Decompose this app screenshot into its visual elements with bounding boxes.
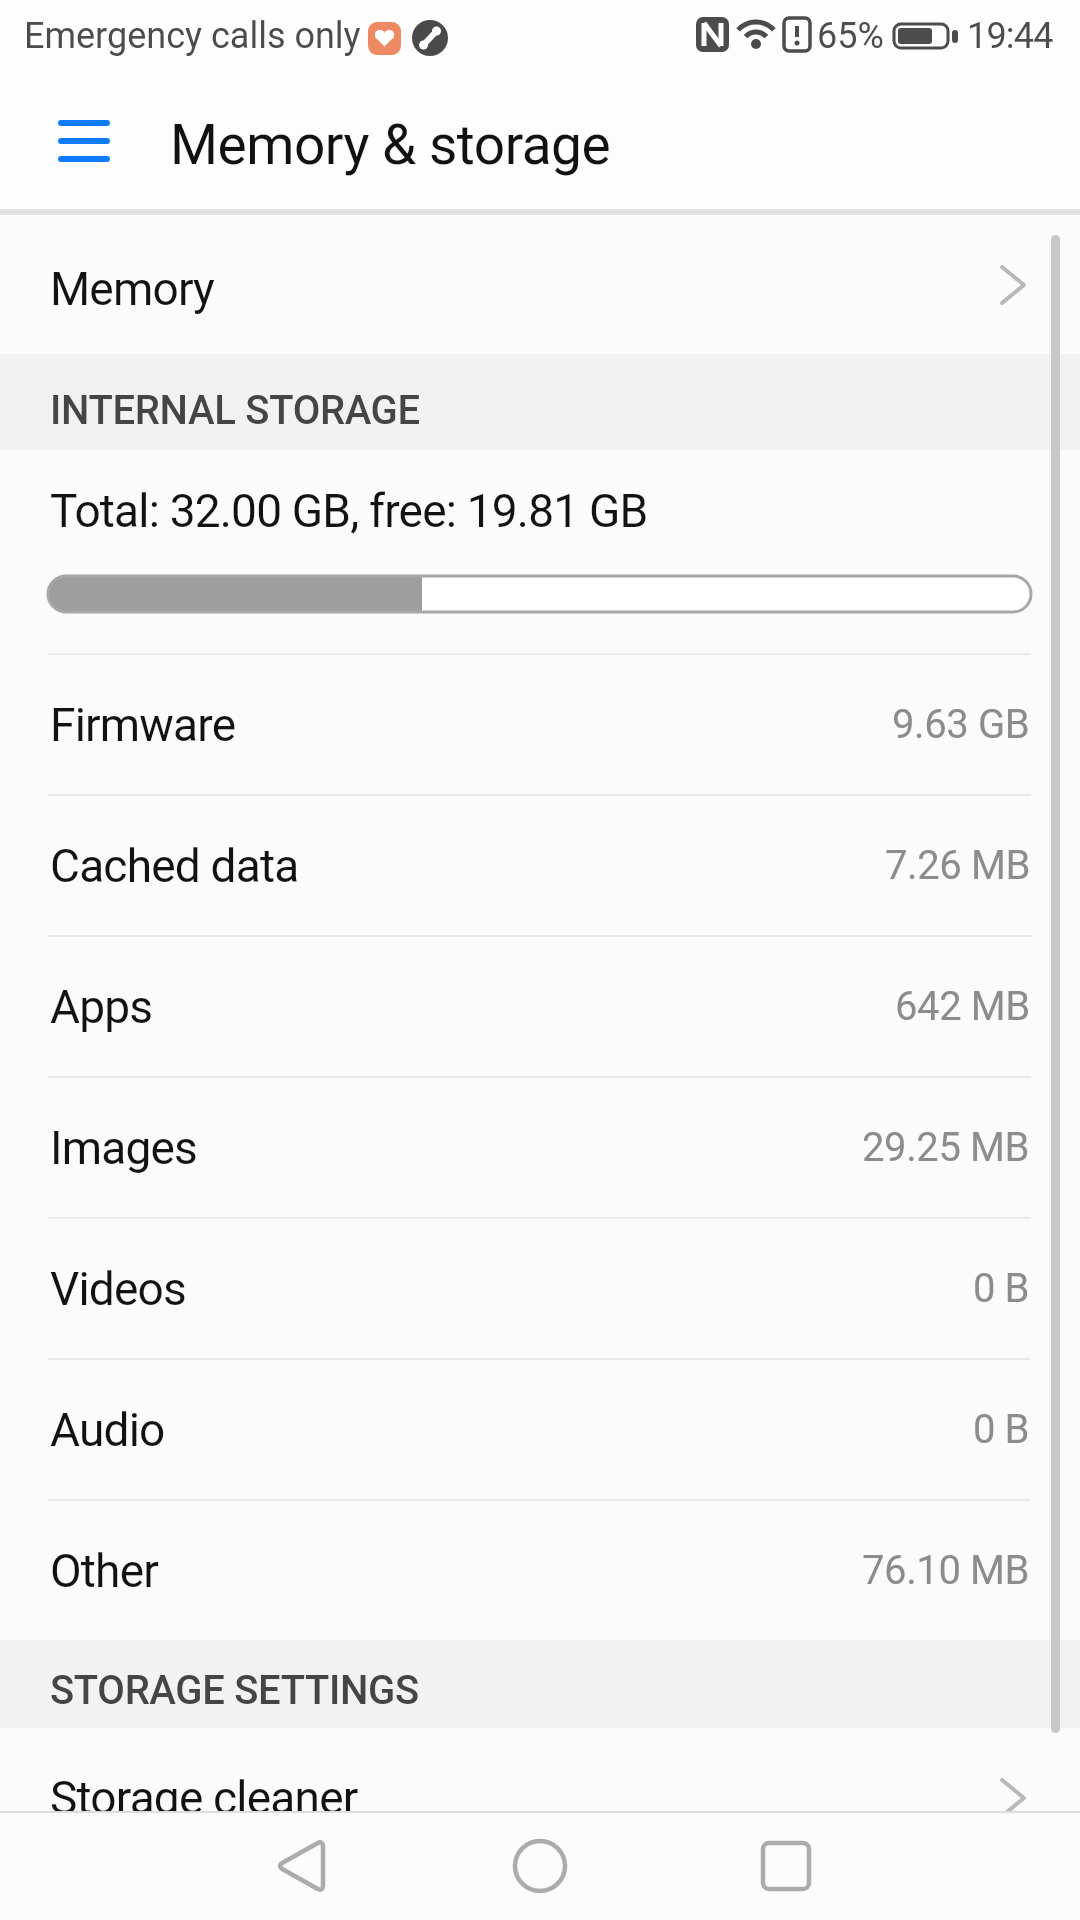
button[interactable]: Videos xyxy=(0,1219,1080,1358)
staticText: Images xyxy=(50,1121,198,1175)
staticText: 7.26 MB xyxy=(885,842,1030,889)
button[interactable] xyxy=(58,120,110,162)
staticText: INTERNAL STORAGE xyxy=(50,387,420,434)
staticText: Apps xyxy=(50,980,153,1034)
staticText: Memory & storage xyxy=(170,113,611,177)
button[interactable]: Memory xyxy=(0,215,1080,354)
staticText: 76.10 MB xyxy=(862,1547,1030,1594)
staticText: STORAGE SETTINGS xyxy=(50,1667,419,1714)
button[interactable]: Firmware xyxy=(0,655,1080,794)
button[interactable]: Cached data xyxy=(0,796,1080,935)
staticText: 642 MB xyxy=(895,983,1030,1030)
staticText: 9.63 GB xyxy=(892,701,1030,748)
button[interactable] xyxy=(360,1813,720,1920)
button[interactable]: Images xyxy=(0,1078,1080,1217)
button[interactable]: Apps xyxy=(0,937,1080,1076)
staticText: Audio xyxy=(50,1403,165,1457)
staticText: Total: 32.00 GB, free: 19.81 GB xyxy=(50,484,648,538)
staticText: 65% xyxy=(817,15,884,57)
staticText: Storage cleaner xyxy=(50,1771,358,1825)
staticText: Cached data xyxy=(50,839,299,893)
staticText: 29.25 MB xyxy=(862,1124,1030,1171)
staticText: Emergency calls only xyxy=(24,15,361,57)
button[interactable]: Audio xyxy=(0,1360,1080,1499)
button[interactable]: Storage cleaner xyxy=(0,1728,1080,1867)
staticText: Firmware xyxy=(50,698,236,752)
staticText: Memory xyxy=(50,262,215,316)
button[interactable]: Other xyxy=(0,1501,1080,1640)
staticText: Videos xyxy=(50,1262,186,1316)
staticText: 19:44 xyxy=(967,15,1053,57)
button[interactable] xyxy=(0,1813,360,1920)
staticText: 0 B xyxy=(973,1406,1030,1453)
staticText: Other xyxy=(50,1544,159,1598)
staticText: 0 B xyxy=(973,1265,1030,1312)
button[interactable] xyxy=(720,1813,1080,1920)
